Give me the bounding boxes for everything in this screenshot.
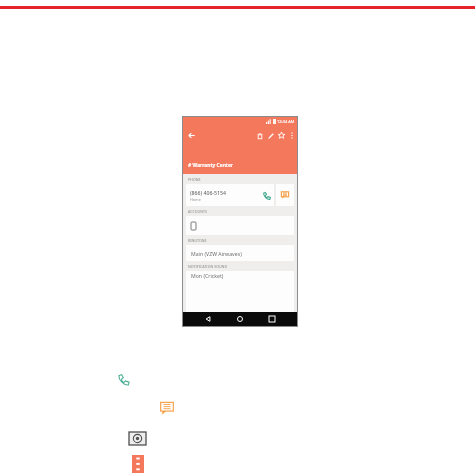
staticText: ACCOUNTS [188,209,207,214]
button[interactable]: Home [233,312,247,326]
button[interactable]: Main (VZW Airwaves) [186,245,294,261]
staticText: # Warranty Center [188,162,233,169]
button[interactable]: Delete [254,130,265,141]
staticText: NOTIFICATION SOUND [188,264,228,269]
button[interactable]: Call [116,372,132,388]
button[interactable]: Edit [265,130,276,141]
button[interactable] [186,216,294,235]
button[interactable]: Favorite [276,130,287,141]
button[interactable]: Email [127,428,147,448]
button[interactable]: Mon (Cricket) [186,271,294,312]
button[interactable]: More options [130,454,146,474]
button[interactable]: Recents [265,312,279,326]
button[interactable]: Back [185,129,197,141]
staticText: 12:34 AM [277,119,295,124]
staticText: Mon (Cricket) [191,272,224,279]
button[interactable]: Message [158,399,176,417]
button[interactable]: More options [287,131,296,140]
staticText: Home [190,197,201,202]
button[interactable]: Call [259,188,274,203]
button[interactable]: (866) 406-5154 [186,184,274,206]
button[interactable]: Back [201,312,215,326]
staticText: RINGTONE [188,238,207,243]
button[interactable]: Message [276,184,294,206]
staticText: PHONE [188,177,201,182]
staticText: Main (VZW Airwaves) [191,250,242,257]
staticText: (866) 406-5154 [190,189,226,196]
